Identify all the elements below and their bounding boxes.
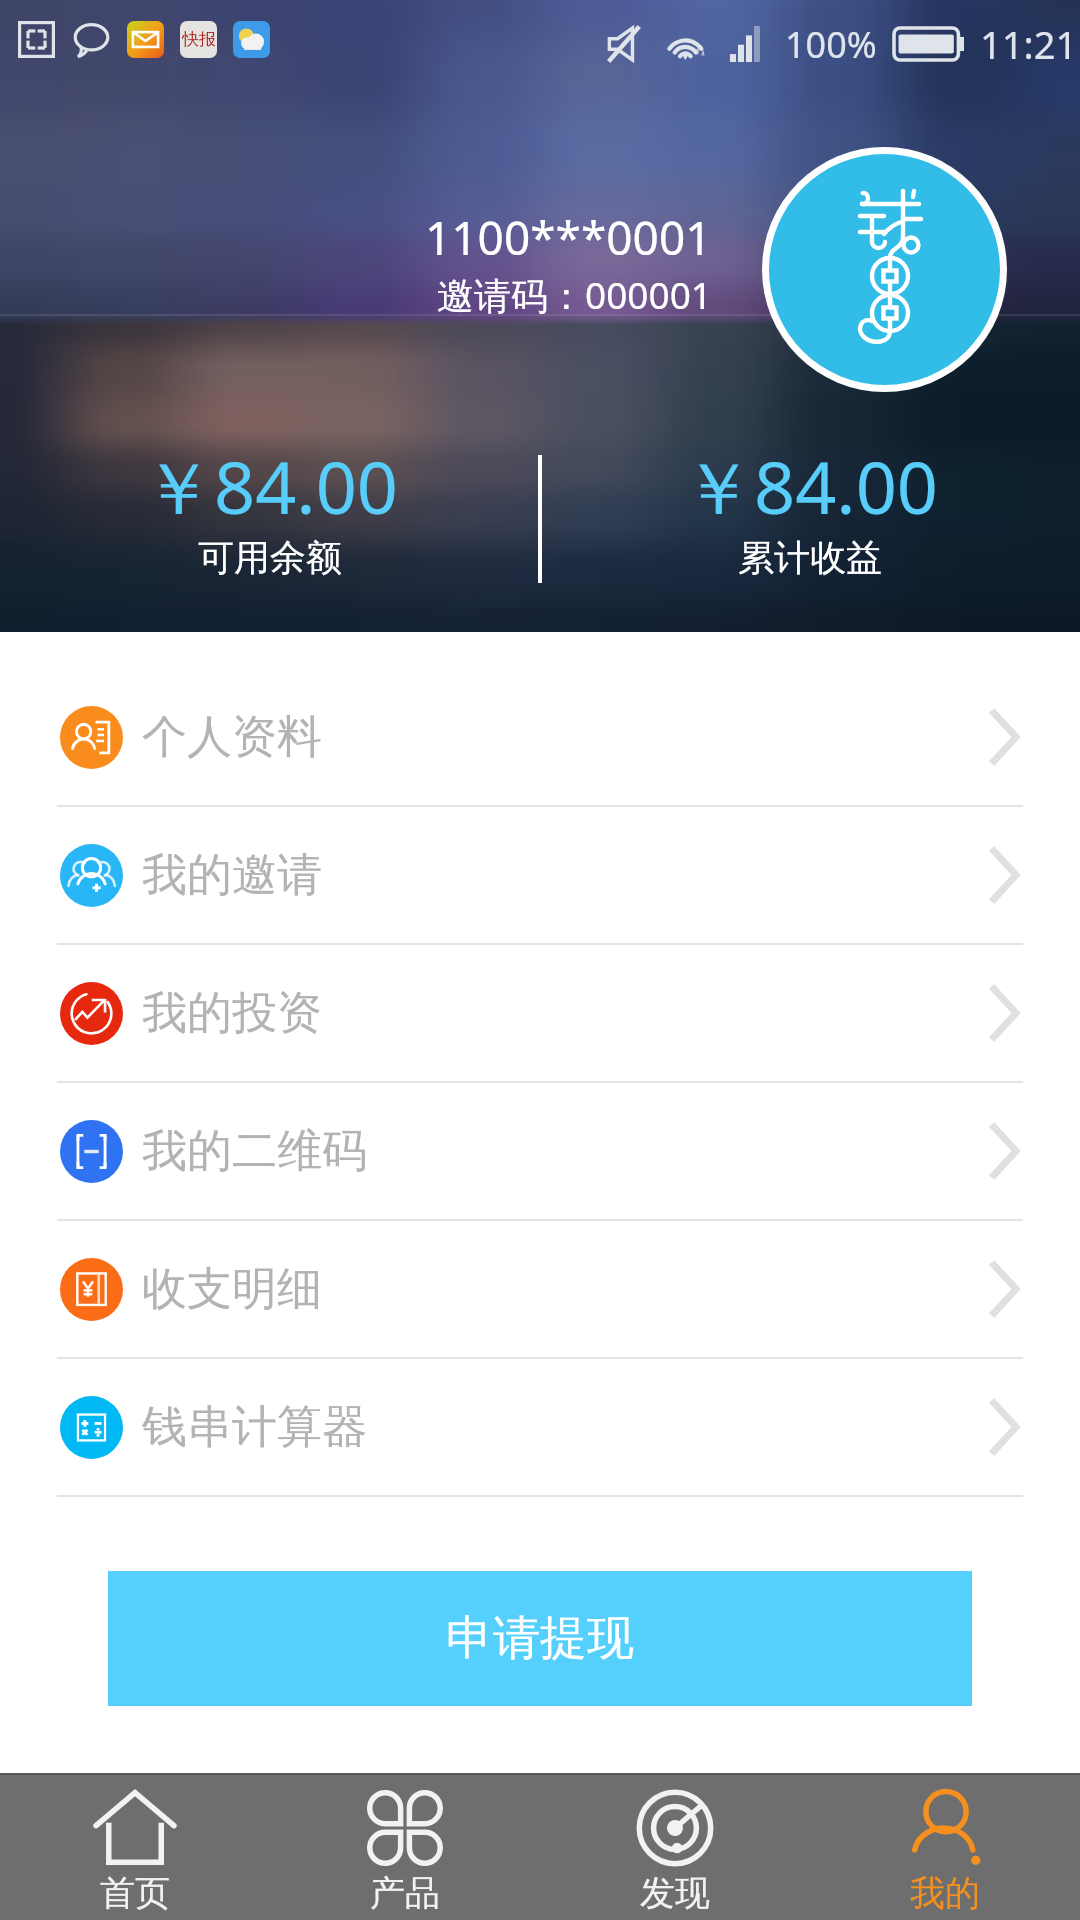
staticText: 申请提现 xyxy=(446,1609,634,1668)
staticText: 发现 xyxy=(640,1871,710,1915)
staticText: 钱串计算器 xyxy=(142,1399,367,1456)
button[interactable]: 个人资料 xyxy=(0,669,1080,807)
staticText: 收支明细 xyxy=(142,1261,322,1318)
staticText: 我的投资 xyxy=(142,985,322,1042)
staticText: 产品 xyxy=(370,1871,440,1915)
staticText: 11:21 xyxy=(980,18,1078,70)
button[interactable]: 首页 xyxy=(0,1773,270,1920)
button[interactable]: 我的投资 xyxy=(0,945,1080,1083)
staticText: 我的二维码 xyxy=(142,1123,367,1180)
staticText: 邀请码：000001 xyxy=(437,269,712,320)
button[interactable]: 我的邀请 xyxy=(0,807,1080,945)
staticText: 我的 xyxy=(910,1871,980,1915)
button[interactable]: 产品 xyxy=(270,1773,540,1920)
staticText: ￥84.00 xyxy=(682,437,939,535)
staticText: 1100***0001 xyxy=(425,206,712,269)
button[interactable]: 我的二维码 xyxy=(0,1083,1080,1221)
staticText: 首页 xyxy=(100,1871,170,1915)
button[interactable]: 收支明细 xyxy=(0,1221,1080,1359)
button[interactable]: 发现 xyxy=(540,1773,810,1920)
button[interactable]: 钱串计算器 xyxy=(0,1359,1080,1497)
staticText: 累计收益 xyxy=(738,535,882,580)
staticText: 快报 xyxy=(182,29,216,50)
button[interactable]: 申请提现 xyxy=(108,1571,972,1706)
staticText: 可用余额 xyxy=(198,535,342,580)
staticText: 我的邀请 xyxy=(142,847,322,904)
staticText: ￥84.00 xyxy=(142,437,399,535)
button[interactable]: 我的 xyxy=(810,1773,1080,1920)
staticText: 100% xyxy=(785,20,877,69)
button[interactable]: Avatar xyxy=(769,154,1000,385)
staticText: 个人资料 xyxy=(142,709,322,766)
